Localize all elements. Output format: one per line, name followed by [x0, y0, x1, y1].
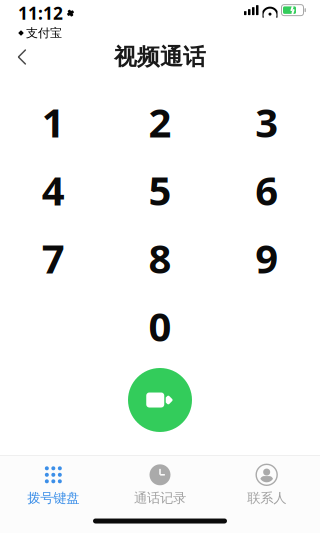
staticText: 联系人 — [247, 490, 286, 506]
staticText: 1 — [42, 95, 65, 148]
button[interactable]: Contacts — [213, 460, 320, 509]
staticText: 支付宝 — [26, 26, 62, 40]
button[interactable]: 3 — [213, 88, 320, 156]
staticText: 4 — [42, 163, 65, 216]
button[interactable]: 7 — [0, 224, 107, 292]
staticText: 9 — [255, 231, 278, 284]
button[interactable]: 0 — [107, 292, 213, 360]
button[interactable]: 2 — [107, 88, 213, 156]
staticText: 2 — [148, 95, 171, 148]
button[interactable]: 5 — [107, 156, 213, 224]
button[interactable]: 8 — [107, 224, 213, 292]
staticText: 3 — [255, 95, 278, 148]
staticText: 0 — [148, 299, 171, 352]
staticText: 5 — [148, 163, 171, 216]
staticText: 8 — [148, 231, 171, 284]
button[interactable]: 1 — [0, 88, 107, 156]
button[interactable]: 4 — [0, 156, 107, 224]
staticText: 6 — [255, 163, 278, 216]
button[interactable]: Call history — [107, 460, 213, 509]
staticText: 视频通话 — [114, 43, 206, 71]
button[interactable]: Dial pad — [0, 460, 107, 509]
button[interactable]: 6 — [213, 156, 320, 224]
staticText: 拨号键盘 — [27, 490, 79, 506]
button[interactable]: 9 — [213, 224, 320, 292]
button[interactable]: Back — [0, 38, 44, 76]
staticText: 通话记录 — [134, 490, 186, 506]
staticText: 11:12 — [18, 2, 63, 25]
button[interactable]: Start video call — [128, 368, 192, 432]
staticText: 7 — [42, 231, 65, 284]
